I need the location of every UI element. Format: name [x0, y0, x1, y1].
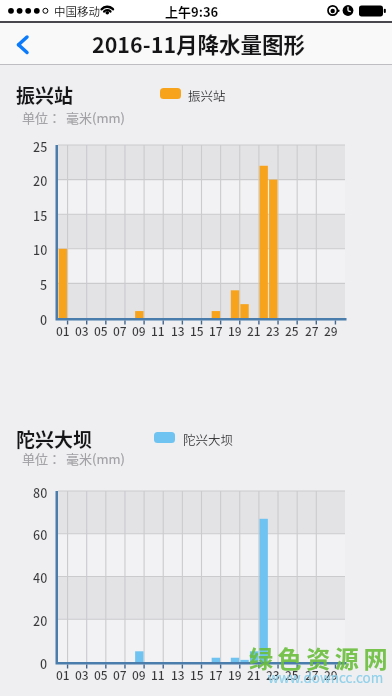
staticText: 29 — [324, 322, 338, 339]
staticText: 2016-11月降水量图形 — [92, 28, 306, 59]
staticText: 中国移动 — [54, 3, 100, 20]
staticText: 毫米(mm) — [66, 449, 125, 468]
staticText: 17 — [209, 322, 223, 339]
staticText: 05 — [94, 322, 108, 339]
staticText: 23 — [266, 666, 280, 683]
staticText: 05 — [94, 666, 108, 683]
staticText: 25 — [285, 666, 299, 683]
staticText: 11 — [151, 666, 165, 683]
staticText: 25 — [33, 137, 48, 155]
button[interactable] — [8, 28, 42, 60]
staticText: 23 — [266, 322, 280, 339]
staticText: 60 — [33, 525, 48, 543]
staticText: 20 — [33, 171, 48, 189]
staticText: 27 — [305, 322, 319, 339]
staticText: 01 — [56, 666, 70, 683]
staticText: 毫米(mm) — [66, 108, 125, 127]
staticText: 09 — [132, 666, 146, 683]
button[interactable]: 陀兴大坝 — [16, 425, 93, 453]
staticText: 21 — [247, 322, 261, 339]
staticText: 03 — [75, 322, 89, 339]
staticText: 0 — [40, 310, 48, 328]
staticText: 15 — [33, 206, 48, 224]
button[interactable]: 振兴站 — [16, 81, 74, 109]
staticText: 07 — [113, 666, 127, 683]
staticText: 07 — [113, 322, 127, 339]
staticText: 陀兴大坝 — [16, 425, 93, 453]
staticText: 单位： — [22, 449, 62, 468]
staticText: 25 — [285, 322, 299, 339]
staticText: 10 — [33, 240, 48, 258]
staticText: 15 — [190, 666, 204, 683]
staticText: 5 — [40, 275, 48, 293]
staticText: 振兴站 — [188, 86, 226, 104]
staticText: 绿色资源网 — [249, 640, 392, 675]
staticText: 01 — [56, 322, 70, 339]
staticText: 单位： — [22, 108, 62, 127]
staticText: 21 — [247, 666, 261, 683]
staticText: 20 — [33, 611, 48, 629]
staticText: 19 — [228, 322, 242, 339]
staticText: 80 — [33, 483, 48, 501]
staticText: 13 — [171, 666, 185, 683]
staticText: 27 — [305, 666, 319, 683]
staticText: 11 — [151, 322, 165, 339]
staticText: 03 — [75, 666, 89, 683]
staticText: 上午9:36 — [165, 2, 219, 21]
staticText: 19 — [228, 666, 242, 683]
staticText: 09 — [132, 322, 146, 339]
staticText: 振兴站 — [16, 81, 74, 109]
staticText: www.downcc.com — [268, 667, 384, 687]
staticText: 40 — [33, 568, 48, 586]
staticText: 29 — [324, 666, 338, 683]
staticText: 15 — [190, 322, 204, 339]
staticText: 陀兴大坝 — [183, 430, 234, 448]
staticText: 13 — [171, 322, 185, 339]
staticText: 17 — [209, 666, 223, 683]
staticText: 0 — [40, 654, 48, 672]
